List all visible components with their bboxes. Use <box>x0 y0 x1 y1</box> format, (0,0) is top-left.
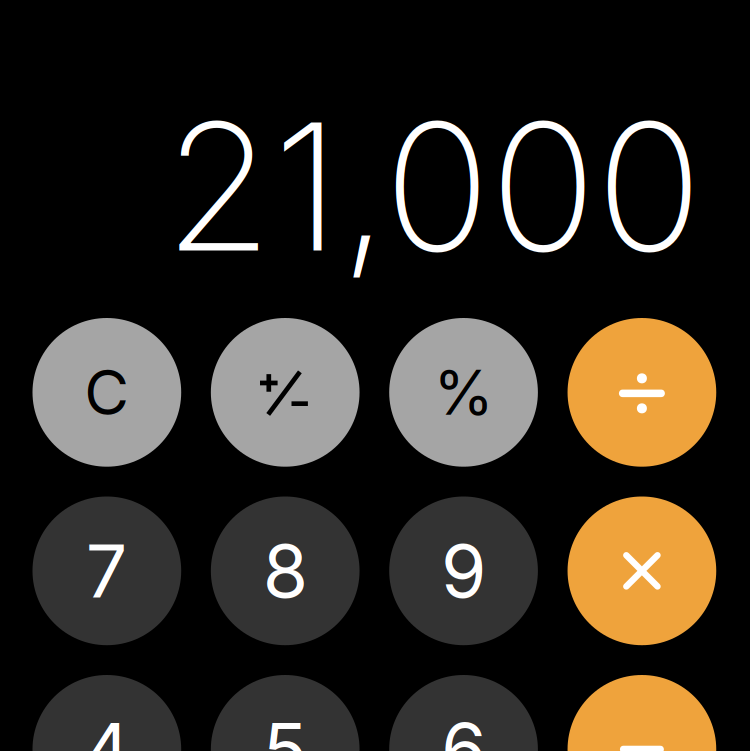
staticText: 4 <box>83 705 130 751</box>
staticText: 5 <box>263 705 308 751</box>
button[interactable]: 6 <box>389 675 538 751</box>
button[interactable]: 4 <box>32 675 181 751</box>
staticText: 8 <box>263 526 308 615</box>
button[interactable]: Toggle sign <box>211 318 359 467</box>
staticText: 6 <box>441 705 486 751</box>
button[interactable]: % <box>389 318 538 467</box>
button[interactable]: Subtract <box>567 675 716 751</box>
staticText: C <box>84 355 129 429</box>
button[interactable]: 8 <box>211 496 359 645</box>
staticText: 7 <box>86 526 128 615</box>
button[interactable]: 5 <box>211 675 359 751</box>
button[interactable]: 9 <box>389 496 538 645</box>
button[interactable]: Multiply <box>567 496 716 645</box>
staticText: % <box>433 355 493 429</box>
staticText: 9 <box>441 526 486 615</box>
button[interactable]: C <box>32 318 181 467</box>
button[interactable]: Divide <box>567 318 716 467</box>
button[interactable]: 7 <box>32 496 181 645</box>
staticText: 21,000 <box>164 80 702 293</box>
